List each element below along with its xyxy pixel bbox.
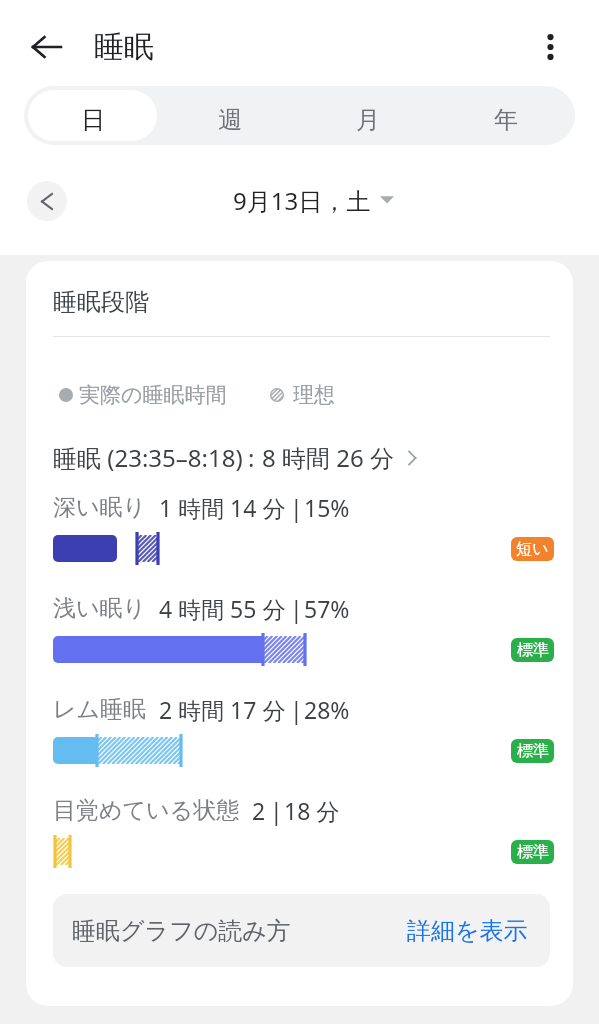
- staticText: 2 時間 17 分: [159, 694, 286, 725]
- staticText: レム睡眠: [53, 695, 147, 724]
- button[interactable]: 年: [441, 90, 571, 141]
- staticText: 57%: [304, 593, 350, 624]
- button[interactable]: 週: [165, 90, 295, 141]
- staticText: 標準: [517, 640, 549, 660]
- staticText: 月: [356, 105, 380, 135]
- staticText: 深い眠り: [53, 493, 147, 522]
- button[interactable]: More options: [522, 19, 578, 75]
- staticText: 睡眠: [94, 28, 154, 66]
- staticText: 目覚めている状態: [53, 796, 240, 825]
- staticText: 睡眠 (23:35–8:18): [53, 441, 243, 474]
- button[interactable]: Back: [18, 18, 75, 75]
- staticText: :: [248, 441, 255, 474]
- button[interactable]: 月: [303, 90, 433, 141]
- staticText: 28%: [304, 694, 350, 725]
- staticText: 標準: [517, 842, 549, 862]
- staticText: 浅い眠り: [53, 594, 147, 623]
- button[interactable]: 睡眠 (23:35–8:18): [53, 441, 420, 474]
- button[interactable]: 9月13日，土: [229, 180, 398, 221]
- staticText: 実際の睡眠時間: [79, 382, 227, 408]
- staticText: 週: [218, 105, 242, 135]
- staticText: 標準: [517, 741, 549, 761]
- staticText: 理想: [293, 382, 335, 408]
- staticText: 短い: [516, 539, 549, 559]
- staticText: 年: [494, 105, 518, 135]
- staticText: |: [290, 492, 303, 523]
- button[interactable]: Previous day: [27, 181, 67, 221]
- staticText: |: [290, 593, 303, 624]
- staticText: 4 時間 55 分: [159, 593, 286, 624]
- staticText: 睡眠段階: [53, 287, 149, 317]
- staticText: 詳細を表示: [407, 916, 528, 946]
- button[interactable]: 睡眠グラフの読み方: [53, 894, 550, 967]
- staticText: 8 時間 26 分: [262, 441, 394, 474]
- staticText: |: [290, 694, 303, 725]
- staticText: 睡眠グラフの読み方: [72, 916, 291, 946]
- staticText: 15%: [304, 492, 350, 523]
- staticText: 1 時間 14 分: [159, 492, 286, 523]
- staticText: 18 分: [284, 795, 340, 826]
- staticText: |: [270, 795, 283, 826]
- staticText: 9月13日，土: [233, 184, 371, 217]
- staticText: 2: [252, 795, 266, 826]
- staticText: 日: [81, 105, 105, 135]
- button[interactable]: 日: [28, 90, 157, 141]
